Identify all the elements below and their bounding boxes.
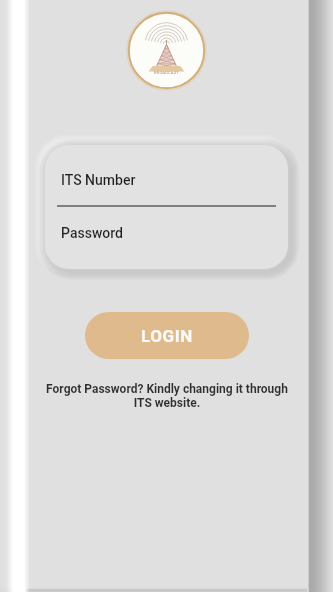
button[interactable]: ITS Number bbox=[61, 172, 276, 188]
staticText: Forgot Password? Kindly changing it thro… bbox=[46, 382, 288, 410]
staticText: ITS Number bbox=[61, 172, 136, 188]
staticText: Password bbox=[61, 225, 124, 241]
button[interactable]: Password bbox=[61, 225, 276, 241]
staticText: BROADCAST bbox=[154, 70, 179, 75]
button[interactable]: LOGIN bbox=[85, 312, 249, 359]
staticText: LOGIN bbox=[141, 326, 193, 346]
